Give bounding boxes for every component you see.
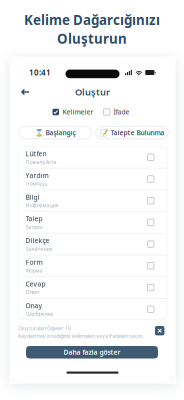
staticText: Kaydetmek istediğiniz kelimeleri veya if… [18,332,143,339]
button[interactable]: ⌛ [19,126,91,139]
button[interactable]: Kelimeler [52,106,93,118]
staticText: Cevap [25,279,45,288]
staticText: 📝 [100,129,108,136]
staticText: Kelimeler [62,108,93,116]
staticText: Form [25,258,42,267]
staticText: Oluşturun [57,30,127,47]
staticText: Yardım [25,171,48,180]
staticText: Bilgi [25,193,39,201]
staticText: Daha fazla göster [63,348,120,357]
staticText: Onay [25,301,42,310]
button[interactable]: İfade [103,106,129,118]
staticText: İfade [113,108,129,116]
button[interactable]: Back [18,85,32,99]
button[interactable]: Cevap [18,277,167,298]
button[interactable]: Talep [18,212,167,233]
staticText: 10:41 [29,67,51,78]
button[interactable]: Dilekçe [18,234,167,255]
staticText: Başlangıç [45,128,75,137]
button[interactable]: Yardım [18,168,167,189]
staticText: Форма [25,267,42,274]
staticText: Kelime Dağarcığınızı [24,11,160,29]
staticText: Talep [25,214,42,223]
staticText: Информация [25,202,58,209]
staticText: Oluşturulan Öğeler: 10 [18,324,71,332]
staticText: Dilekçe [25,236,49,245]
staticText: Talepte Bulunma [111,128,165,137]
button[interactable]: Onay [18,299,167,320]
staticText: Пожалуйста [25,158,56,165]
button[interactable]: Bilgi [18,190,167,211]
staticText: ⌛ [34,129,42,136]
staticText: Заявление [25,245,52,252]
staticText: Запрос [25,223,43,230]
button[interactable]: 📝 [96,126,168,139]
button[interactable]: Close [155,326,164,335]
staticText: Ответ [25,288,39,296]
staticText: Lütfen [25,149,46,158]
button[interactable]: Form [18,255,167,276]
staticText: Помощь [25,180,47,187]
button[interactable]: Lütfen [18,147,167,168]
staticText: Oluştur [75,86,110,98]
button[interactable]: Daha fazla göster [26,346,158,358]
staticText: Одобрение [25,310,53,317]
